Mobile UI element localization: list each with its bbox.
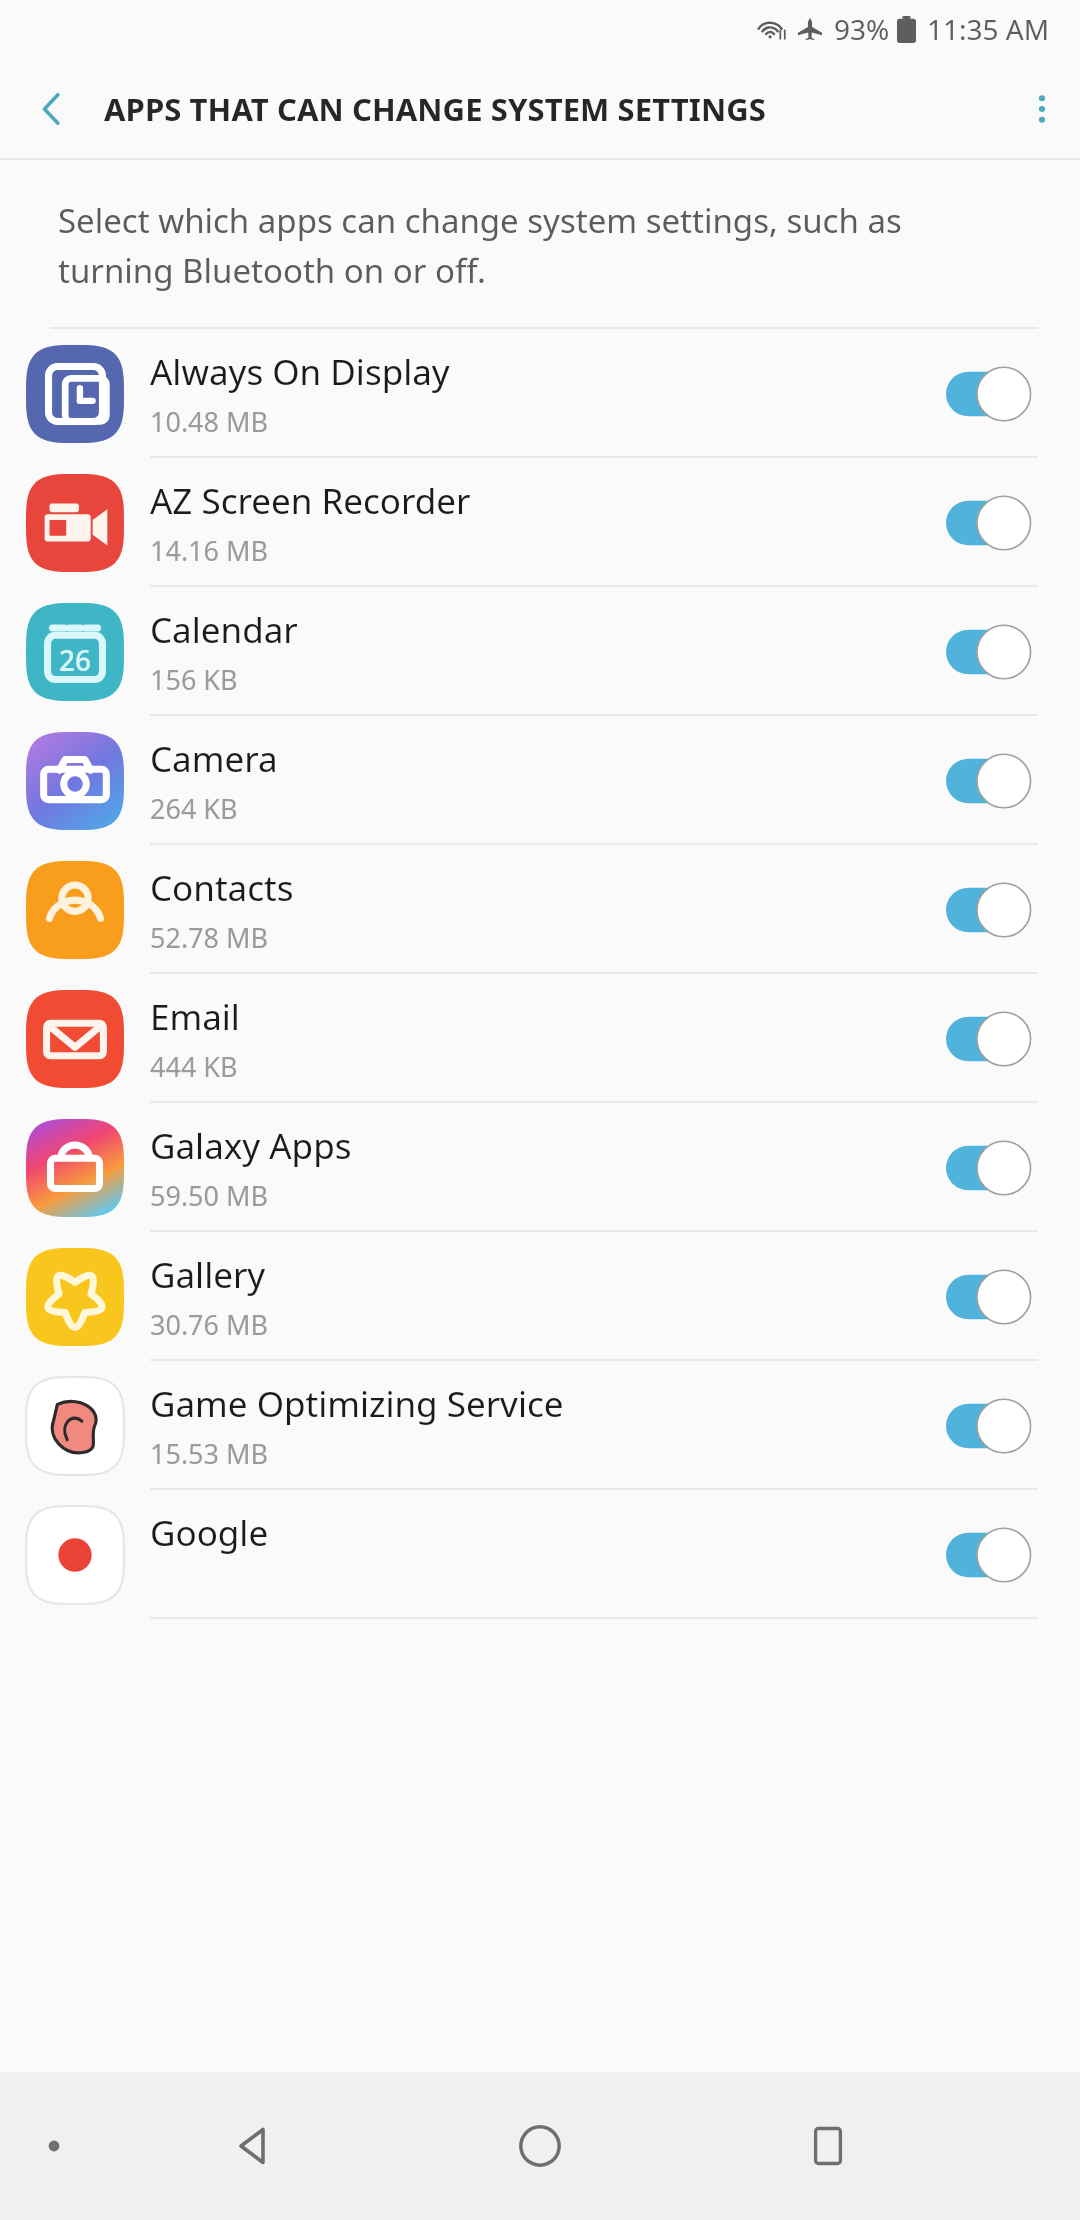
staticText: Contacts bbox=[150, 864, 294, 912]
button[interactable]: AZ Screen Recorder bbox=[0, 458, 1080, 587]
staticText: 15.53 MB bbox=[150, 1435, 269, 1472]
button[interactable]: Recents bbox=[684, 2072, 972, 2220]
staticText: Email bbox=[150, 993, 240, 1041]
staticText: 11:35 AM bbox=[927, 10, 1050, 48]
button[interactable]: Email bbox=[0, 974, 1080, 1103]
staticText: 10.48 MB bbox=[150, 403, 269, 440]
button[interactable]: Gallery bbox=[0, 1232, 1080, 1361]
button[interactable]: More options bbox=[1004, 58, 1080, 160]
button[interactable] bbox=[946, 1137, 1056, 1199]
staticText: 30.76 MB bbox=[150, 1306, 269, 1343]
button[interactable] bbox=[946, 1008, 1056, 1070]
button[interactable]: Camera bbox=[0, 716, 1080, 845]
button[interactable] bbox=[946, 879, 1056, 941]
staticText: 59.50 MB bbox=[150, 1177, 269, 1214]
staticText: 14.16 MB bbox=[150, 532, 269, 569]
button[interactable] bbox=[946, 492, 1056, 554]
staticText: 264 KB bbox=[150, 790, 238, 827]
button[interactable]: Always On Display bbox=[0, 329, 1080, 458]
staticText: Camera bbox=[150, 735, 278, 783]
staticText: Game Optimizing Service bbox=[150, 1380, 564, 1428]
button[interactable]: Google bbox=[0, 1490, 1080, 1619]
button[interactable] bbox=[946, 1395, 1056, 1457]
staticText: 26 bbox=[59, 641, 92, 679]
staticText: Calendar bbox=[150, 606, 298, 654]
staticText: 93% bbox=[834, 10, 890, 48]
button[interactable] bbox=[946, 621, 1056, 683]
staticText: Always On Display bbox=[150, 348, 450, 396]
staticText: 52.78 MB bbox=[150, 919, 269, 956]
staticText: 444 KB bbox=[150, 1048, 238, 1085]
staticText: Google bbox=[150, 1509, 269, 1557]
button[interactable]: Home bbox=[396, 2072, 684, 2220]
staticText: Galaxy Apps bbox=[150, 1122, 352, 1170]
staticText: 156 KB bbox=[150, 661, 238, 698]
button[interactable]: Game Optimizing Service bbox=[0, 1361, 1080, 1490]
button[interactable]: Galaxy Apps bbox=[0, 1103, 1080, 1232]
button[interactable]: Contacts bbox=[0, 845, 1080, 974]
staticText: AZ Screen Recorder bbox=[150, 477, 471, 525]
button[interactable]: Navigate up bbox=[0, 58, 104, 160]
staticText: Select which apps can change system sett… bbox=[58, 198, 1024, 293]
button[interactable] bbox=[946, 363, 1056, 425]
button[interactable]: 26 bbox=[0, 587, 1080, 716]
button[interactable] bbox=[946, 1266, 1056, 1328]
staticText: APPS THAT CAN CHANGE SYSTEM SETTINGS bbox=[104, 88, 767, 130]
button[interactable]: Back bbox=[108, 2072, 396, 2220]
button[interactable] bbox=[946, 750, 1056, 812]
staticText: Gallery bbox=[150, 1251, 266, 1299]
button[interactable] bbox=[946, 1524, 1056, 1586]
